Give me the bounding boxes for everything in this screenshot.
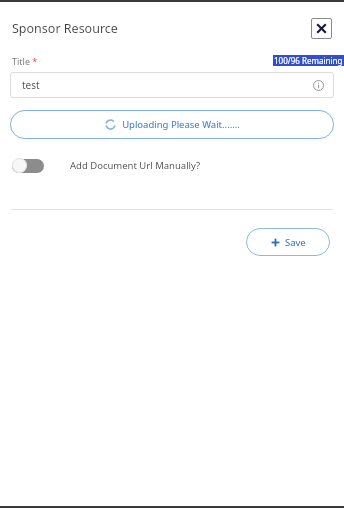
button[interactable]: Information xyxy=(312,79,325,92)
staticText: Add Document Url Manually? xyxy=(70,159,201,172)
button[interactable]: Close xyxy=(311,18,332,39)
button[interactable]: Save xyxy=(246,228,330,256)
staticText: Sponsor Resource xyxy=(12,20,118,37)
button[interactable]: Add Document Url Manually? xyxy=(12,152,332,178)
button[interactable]: Uploading Please Wait....... xyxy=(10,110,334,139)
staticText: Title * xyxy=(12,55,38,67)
staticText: Uploading Please Wait....... xyxy=(122,118,240,131)
staticText: 100/96 Remaining xyxy=(274,55,343,66)
staticText: test xyxy=(22,78,40,92)
button[interactable]: test xyxy=(10,72,334,98)
staticText: Save xyxy=(285,236,306,249)
